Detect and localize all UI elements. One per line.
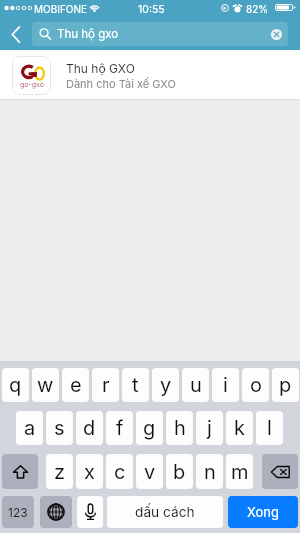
staticText: f bbox=[116, 416, 124, 440]
button[interactable]: Backspace bbox=[262, 454, 298, 489]
staticText: Thu hộ GXO bbox=[66, 61, 135, 76]
staticText: v bbox=[144, 460, 156, 484]
button[interactable]: w bbox=[32, 368, 59, 402]
button[interactable]: Thu hộ gxo bbox=[32, 22, 288, 46]
button[interactable]: f bbox=[106, 411, 133, 445]
staticText: i bbox=[223, 373, 228, 397]
staticText: u bbox=[190, 373, 202, 397]
button[interactable]: Clear text bbox=[269, 27, 283, 41]
staticText: k bbox=[234, 416, 245, 440]
button[interactable]: 123 bbox=[2, 496, 34, 528]
button[interactable]: z bbox=[46, 454, 73, 489]
button[interactable]: g bbox=[136, 411, 163, 445]
staticText: MOBIFONE bbox=[34, 3, 88, 15]
button[interactable]: y bbox=[152, 368, 179, 402]
staticText: b bbox=[173, 460, 186, 484]
button[interactable]: j bbox=[196, 411, 223, 445]
staticText: n bbox=[204, 460, 216, 484]
staticText: q bbox=[9, 373, 22, 397]
button[interactable]: Dictation bbox=[77, 496, 103, 528]
button[interactable]: d bbox=[76, 411, 103, 445]
button[interactable]: p bbox=[272, 368, 299, 402]
staticText: 82% bbox=[246, 3, 269, 15]
staticText: Thu hộ gxo bbox=[57, 27, 119, 41]
button[interactable]: i bbox=[212, 368, 239, 402]
staticText: r bbox=[102, 373, 110, 397]
button[interactable]: c bbox=[106, 454, 133, 489]
button[interactable]: t bbox=[122, 368, 149, 402]
staticText: c bbox=[114, 460, 126, 484]
button[interactable]: dấu cách bbox=[107, 496, 223, 528]
button[interactable]: n bbox=[196, 454, 223, 489]
staticText: a bbox=[24, 416, 36, 440]
staticText: y bbox=[160, 373, 172, 397]
button[interactable]: r bbox=[92, 368, 119, 402]
staticText: s bbox=[54, 416, 65, 440]
staticText: w bbox=[37, 373, 54, 397]
button[interactable]: Xong bbox=[228, 496, 298, 528]
button[interactable]: a bbox=[16, 411, 43, 445]
staticText: m bbox=[231, 460, 249, 484]
staticText: go-gxo bbox=[20, 80, 44, 88]
staticText: p bbox=[279, 373, 292, 397]
button[interactable]: v bbox=[136, 454, 163, 489]
staticText: j bbox=[207, 416, 212, 440]
button[interactable]: m bbox=[226, 454, 253, 489]
button[interactable]: e bbox=[62, 368, 89, 402]
staticText: t bbox=[132, 373, 139, 397]
button[interactable]: l bbox=[256, 411, 283, 445]
staticText: h bbox=[174, 416, 186, 440]
button[interactable]: o bbox=[242, 368, 269, 402]
button[interactable]: h bbox=[166, 411, 193, 445]
button[interactable]: s bbox=[46, 411, 73, 445]
button[interactable]: Back bbox=[3, 22, 28, 46]
staticText: z bbox=[54, 460, 66, 484]
staticText: 123 bbox=[8, 505, 28, 520]
button[interactable]: x bbox=[76, 454, 103, 489]
button[interactable]: Switch keyboard bbox=[40, 496, 72, 528]
button[interactable]: u bbox=[182, 368, 209, 402]
button[interactable]: k bbox=[226, 411, 253, 445]
staticText: 10:55 bbox=[138, 3, 165, 16]
staticText: g bbox=[143, 416, 156, 440]
button[interactable]: Shift bbox=[2, 454, 38, 489]
staticText: e bbox=[70, 373, 82, 397]
staticText: x bbox=[84, 460, 95, 484]
staticText: d bbox=[83, 416, 96, 440]
button[interactable]: go-gxo bbox=[0, 50, 300, 100]
staticText: Dành cho Tài xế GXO bbox=[66, 77, 176, 90]
button[interactable]: b bbox=[166, 454, 193, 489]
staticText: dấu cách bbox=[135, 504, 195, 521]
staticText: o bbox=[250, 373, 262, 397]
staticText: l bbox=[267, 416, 272, 440]
button[interactable]: q bbox=[2, 368, 29, 402]
staticText: Xong bbox=[247, 504, 279, 520]
